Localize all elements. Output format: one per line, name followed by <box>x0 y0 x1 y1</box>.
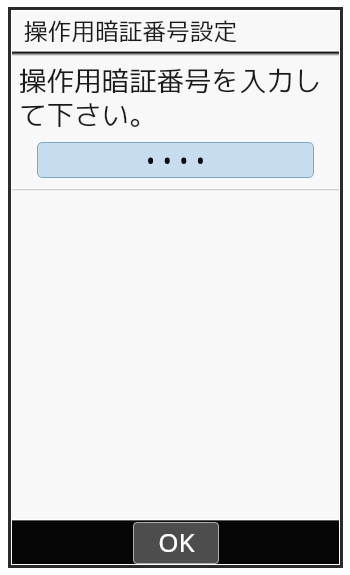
button[interactable]: OK <box>133 522 219 564</box>
staticText: 操作用暗証番号を入力し て下さい。 <box>19 61 322 133</box>
staticText: 操作用暗証番号設定 <box>24 15 238 48</box>
button[interactable]: PIN entry field <box>37 142 314 178</box>
staticText: OK <box>158 524 195 559</box>
